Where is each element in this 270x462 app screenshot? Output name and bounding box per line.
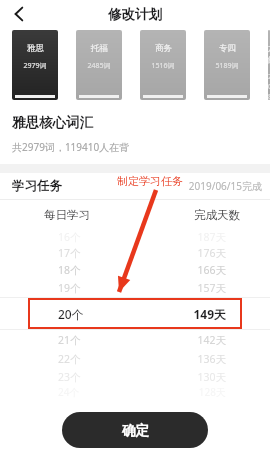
button[interactable]: 22个 [0,350,270,368]
button[interactable]: 雅思 [12,30,58,100]
staticText: 20个 [58,306,84,322]
staticText: 2019/06/15完成 [188,179,262,193]
staticText: 166天 [197,263,226,277]
staticText: 16个 [58,230,81,244]
staticText: 修改计划 [108,6,162,23]
staticText: 5189词 [215,61,239,71]
staticText: 2088词 [268,72,270,100]
staticText: 18个 [58,263,81,277]
staticText: 每日学习 [44,208,90,222]
staticText: 共2979词，119410人在背 [12,140,130,154]
staticText: 176天 [197,246,226,260]
staticText: 雅思核心词汇 [12,114,93,131]
staticText: 学习任务 [12,178,62,194]
staticText: 23个 [58,370,81,384]
staticText: 128天 [198,385,226,399]
button[interactable]: Back [6,3,28,25]
staticText: 雅思 [27,43,44,54]
staticText: 完成天数 [194,208,240,222]
staticText: 托福 [91,43,108,54]
staticText: 专四 [219,43,236,54]
button[interactable]: 20个 [28,298,242,329]
staticText: 制定学习任务 [117,174,183,188]
staticText: 136天 [197,352,226,366]
button[interactable]: 18个 [0,261,270,279]
button[interactable]: 19个 [0,279,270,297]
button[interactable]: 23个 [0,368,270,385]
staticText: 六级 [268,43,270,65]
staticText: 157天 [197,281,226,295]
staticText: 22个 [58,352,81,366]
staticText: 商务 [155,43,172,54]
staticText: 2485词 [87,61,111,71]
button[interactable]: 21个 [0,330,270,350]
staticText: 1516词 [151,61,175,71]
staticText: 187天 [197,230,226,244]
staticText: 130天 [197,370,226,384]
button[interactable]: 17个 [0,244,270,261]
button[interactable]: 16个 [0,230,270,244]
staticText: 21个 [58,333,81,347]
staticText: 149天 [193,306,226,322]
button[interactable]: 商务 [140,30,186,100]
staticText: 2979词 [23,61,47,71]
button[interactable]: 六级 [268,30,270,100]
button[interactable]: 确定 [62,412,208,448]
staticText: 17个 [58,246,81,260]
staticText: 确定 [122,422,149,439]
button[interactable]: 托福 [76,30,122,100]
button[interactable]: 专四 [204,30,250,100]
staticText: 142天 [197,333,226,347]
staticText: 19个 [58,281,81,295]
